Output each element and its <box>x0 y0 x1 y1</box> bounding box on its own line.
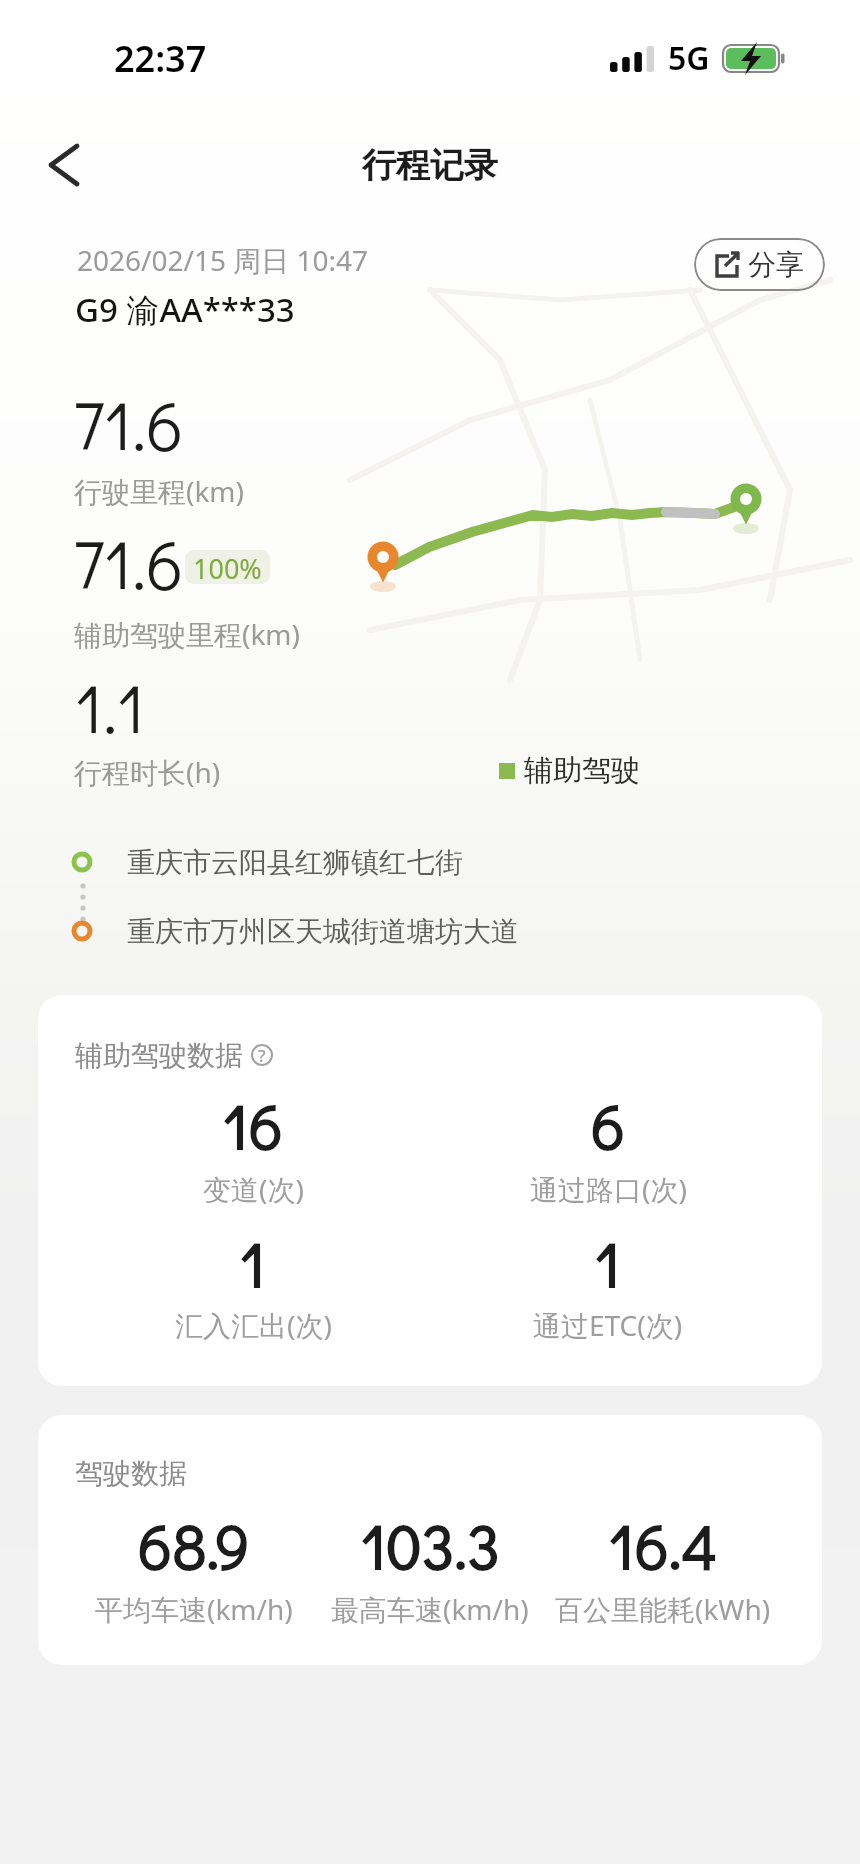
staticText: 分享 <box>748 247 804 282</box>
staticText: 驾驶数据 <box>75 1456 187 1491</box>
staticText: 通过路口(次) <box>530 1170 687 1208</box>
staticText: 1 <box>595 1222 621 1303</box>
button[interactable] <box>38 995 822 1386</box>
button[interactable] <box>38 1415 822 1665</box>
staticText: 71.6 <box>73 518 184 607</box>
staticText: 22:37 <box>114 34 207 83</box>
staticText: 16.4 <box>609 1504 718 1585</box>
staticText: 103.3 <box>361 1504 500 1585</box>
staticText: 汇入汇出(次) <box>175 1306 332 1344</box>
staticText: 5G <box>668 36 710 80</box>
staticText: 行驶里程(km) <box>74 472 244 510</box>
staticText: 2026/02/15 周日 10:47 <box>77 241 369 279</box>
staticText: 行程记录 <box>362 144 498 187</box>
staticText: 1.1 <box>75 662 146 751</box>
staticText: 辅助驾驶里程(km) <box>74 615 300 653</box>
staticText: 重庆市万州区天城街道塘坊大道 <box>127 914 519 949</box>
staticText: 变道(次) <box>203 1170 304 1208</box>
staticText: 100% <box>193 550 262 584</box>
staticText: 最高车速(km/h) <box>331 1590 529 1628</box>
staticText: 重庆市云阳县红狮镇红七街 <box>127 845 463 880</box>
staticText: 行程时长(h) <box>74 753 221 791</box>
staticText: 辅助驾驶数据 <box>75 1038 243 1073</box>
staticText: 平均车速(km/h) <box>95 1590 293 1628</box>
staticText: 百公里能耗(kWh) <box>555 1590 771 1628</box>
staticText: 68.9 <box>138 1504 250 1585</box>
staticText: 6 <box>591 1084 626 1165</box>
staticText: G9 渝AA***33 <box>75 287 295 332</box>
button[interactable] <box>34 135 94 195</box>
staticText: 16 <box>223 1084 283 1165</box>
staticText: ? <box>258 1044 266 1067</box>
button[interactable]: 分享 <box>694 238 825 291</box>
staticText: 辅助驾驶 <box>524 752 640 789</box>
staticText: 71.6 <box>73 379 184 468</box>
staticText: 通过ETC(次) <box>533 1306 683 1344</box>
staticText: 1 <box>240 1222 266 1303</box>
